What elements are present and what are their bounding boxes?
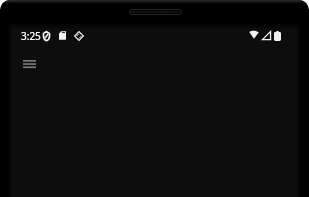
button[interactable]: Status bar [9, 24, 300, 46]
staticText: 3:25 [21, 29, 41, 43]
button[interactable]: Open navigation menu [14, 49, 44, 79]
